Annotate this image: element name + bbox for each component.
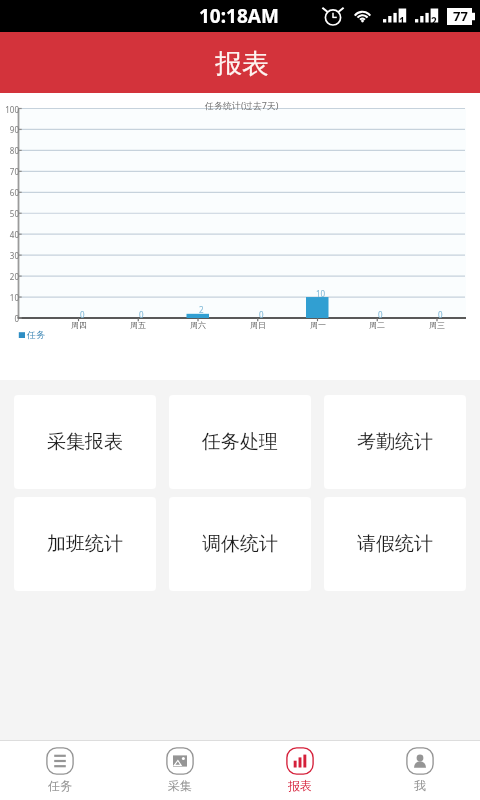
staticText: 我 [414, 778, 426, 793]
staticText: 调休统计 [202, 532, 278, 556]
staticText: 40 [0, 229, 19, 240]
button[interactable]: 请假统计 [324, 497, 466, 591]
staticText: 10 [0, 292, 19, 303]
staticText: 周六 [190, 320, 206, 330]
staticText: 60 [0, 187, 19, 198]
staticText: 请假统计 [357, 532, 433, 556]
other: 报表 [286, 747, 314, 775]
staticText: 报表 [215, 47, 269, 81]
staticText: 10:18AM [199, 3, 279, 29]
button[interactable]: 考勤统计 [324, 395, 466, 489]
staticText: 30 [0, 250, 19, 261]
staticText: 1 [399, 14, 405, 28]
button[interactable]: 任务 [0, 742, 120, 800]
other: 我 [406, 747, 434, 775]
button[interactable]: 任务处理 [169, 395, 311, 489]
button[interactable]: 调休统计 [169, 497, 311, 591]
button[interactable]: 我 [360, 742, 480, 800]
staticText: 任务统计(过去7天) [205, 99, 279, 111]
other: 采集 [166, 747, 194, 775]
staticText: 0 [80, 309, 85, 320]
staticText: 周一 [310, 320, 326, 330]
staticText: 周日 [250, 320, 266, 330]
staticText: 采集 [168, 778, 192, 793]
staticText: 0 [259, 309, 264, 320]
staticText: 周二 [369, 320, 385, 330]
staticText: 0 [0, 313, 19, 324]
staticText: 采集报表 [47, 430, 123, 454]
staticText: 100 [0, 104, 19, 115]
button[interactable]: 采集报表 [14, 395, 156, 489]
staticText: 0 [438, 309, 443, 320]
staticText: 70 [0, 166, 19, 177]
staticText: 2 [199, 304, 204, 315]
staticText: 77 [453, 7, 468, 25]
staticText: 报表 [288, 778, 312, 793]
staticText: 80 [0, 145, 19, 156]
staticText: 加班统计 [47, 532, 123, 556]
staticText: 任务 [27, 329, 45, 340]
other: 任务 [46, 747, 74, 775]
staticText: 周五 [130, 320, 146, 330]
staticText: 周三 [429, 320, 445, 330]
button[interactable]: 加班统计 [14, 497, 156, 591]
staticText: 10 [316, 288, 326, 299]
button[interactable]: 采集 [120, 742, 240, 800]
button[interactable]: 报表 [240, 742, 360, 800]
staticText: 90 [0, 124, 19, 135]
staticText: 周四 [71, 320, 87, 330]
staticText: 0 [139, 309, 144, 320]
staticText: 考勤统计 [357, 430, 433, 454]
staticText: 0 [378, 309, 383, 320]
staticText: 任务 [48, 778, 72, 793]
staticText: 2 [431, 14, 437, 28]
staticText: 20 [0, 271, 19, 282]
staticText: 任务处理 [202, 430, 278, 454]
staticText: 50 [0, 208, 19, 219]
